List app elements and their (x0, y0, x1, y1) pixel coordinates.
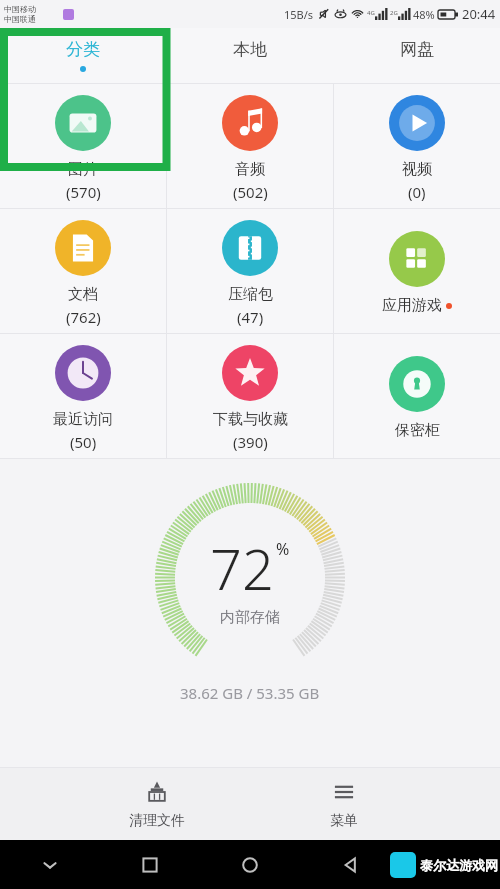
staticText: 下载与收藏 (213, 410, 288, 429)
staticText: (390) (233, 432, 268, 452)
staticText: 2G (390, 9, 398, 17)
button[interactable]: 应用游戏 (334, 209, 500, 333)
staticText: 中国移动 (4, 4, 36, 14)
staticText: 分类 (66, 39, 100, 60)
staticText: 图片 (68, 160, 98, 179)
button[interactable]: 本地 (166, 28, 333, 83)
button[interactable]: Home (200, 840, 300, 889)
button[interactable]: 保密柜 (334, 334, 500, 458)
button[interactable]: 音频 (167, 84, 333, 208)
button[interactable]: 最近访问 (0, 334, 166, 458)
staticText: 本地 (233, 39, 267, 60)
staticText: 应用游戏 (382, 296, 442, 315)
staticText: 文档 (68, 285, 98, 304)
staticText: 网盘 (400, 39, 434, 60)
button[interactable]: 图片 (0, 84, 166, 208)
staticText: 20:44 (462, 5, 496, 23)
staticText: 清理文件 (129, 812, 185, 830)
button[interactable]: 下载与收藏 (167, 334, 333, 458)
staticText: (47) (237, 307, 264, 327)
staticText: (0) (408, 182, 426, 202)
button[interactable]: 视频 (334, 84, 500, 208)
button[interactable]: 网盘 (333, 28, 500, 83)
staticText: 最近访问 (53, 410, 113, 429)
staticText: 38.62 GB / 53.35 GB (180, 683, 320, 703)
staticText: 菜单 (330, 812, 358, 830)
staticText: 15B/s (284, 7, 314, 22)
staticText: (570) (66, 182, 101, 202)
button[interactable]: 压缩包 (167, 209, 333, 333)
staticText: 保密柜 (395, 421, 440, 440)
staticText: 4G (367, 9, 375, 17)
staticText: % (276, 538, 290, 560)
button[interactable]: Hide (0, 840, 100, 889)
button[interactable]: 分类 (0, 28, 166, 83)
staticText: 72 (210, 530, 274, 606)
staticText: 泰尔达游戏网 (420, 857, 498, 873)
button[interactable]: 文档 (0, 209, 166, 333)
staticText: 压缩包 (228, 285, 273, 304)
staticText: 视频 (402, 160, 432, 179)
staticText: (502) (233, 182, 268, 202)
staticText: (762) (66, 307, 101, 327)
button[interactable]: 清理文件 (79, 768, 235, 840)
staticText: 48% (413, 7, 435, 22)
button[interactable]: 菜单 (266, 768, 422, 840)
staticText: 音频 (235, 160, 265, 179)
staticText: (50) (70, 432, 97, 452)
button[interactable]: Recents (100, 840, 200, 889)
staticText: 中国联通 (4, 14, 36, 24)
staticText: 内部存储 (220, 608, 280, 627)
button[interactable]: Back (300, 840, 400, 889)
